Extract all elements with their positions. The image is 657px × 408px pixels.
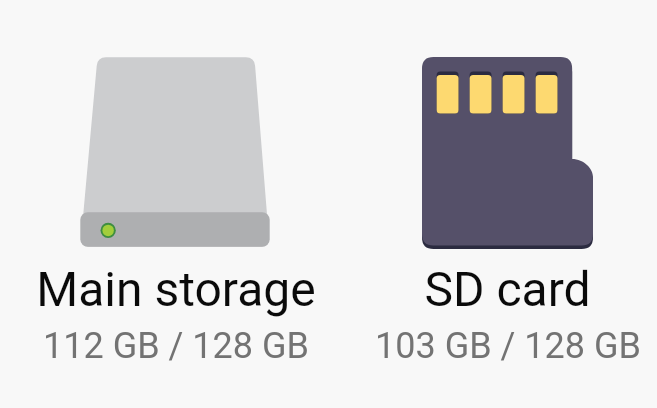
button[interactable]: Main storage [0, 0, 328, 408]
other: SD card [422, 57, 593, 249]
staticText: SD card [424, 261, 591, 317]
staticText: Main storage [36, 261, 316, 317]
other: Main storage [80, 57, 270, 247]
button[interactable]: SD card [328, 0, 657, 408]
staticText: 103 GB / 128 GB [375, 325, 641, 367]
staticText: 112 GB / 128 GB [43, 325, 309, 367]
